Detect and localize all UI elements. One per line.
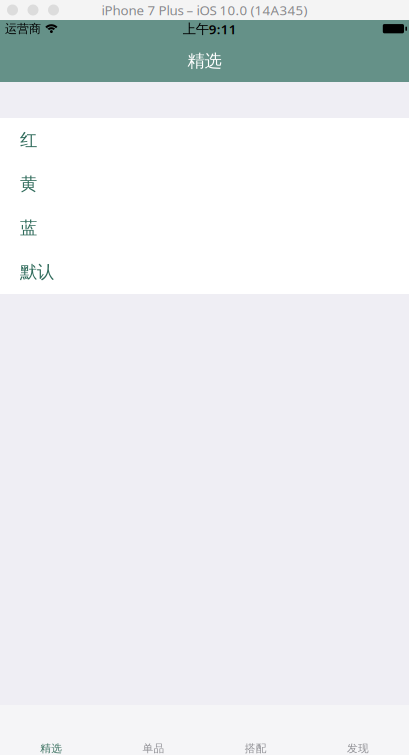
- staticText: iPhone 7 Plus – iOS 10.0 (14A345): [101, 1, 307, 19]
- button[interactable]: 单品: [102, 705, 204, 755]
- button[interactable]: 发现: [307, 705, 409, 755]
- button[interactable]: 黄: [0, 162, 409, 206]
- button[interactable]: 精选: [0, 705, 102, 755]
- staticText: 蓝: [20, 217, 37, 239]
- button[interactable]: 蓝: [0, 206, 409, 250]
- staticText: 黄: [20, 173, 37, 195]
- button[interactable]: 红: [0, 118, 409, 162]
- staticText: 默认: [20, 261, 54, 283]
- staticText: 搭配: [245, 742, 267, 755]
- staticText: 上午: [183, 21, 209, 37]
- staticText: 运营商: [5, 21, 41, 36]
- button[interactable]: 默认: [0, 250, 409, 294]
- staticText: 9:11: [209, 20, 237, 38]
- button[interactable]: 搭配: [204, 705, 307, 755]
- staticText: 发现: [347, 742, 369, 755]
- staticText: 精选: [187, 50, 221, 72]
- staticText: 精选: [40, 742, 62, 755]
- staticText: 红: [20, 129, 37, 151]
- staticText: 单品: [142, 742, 164, 755]
